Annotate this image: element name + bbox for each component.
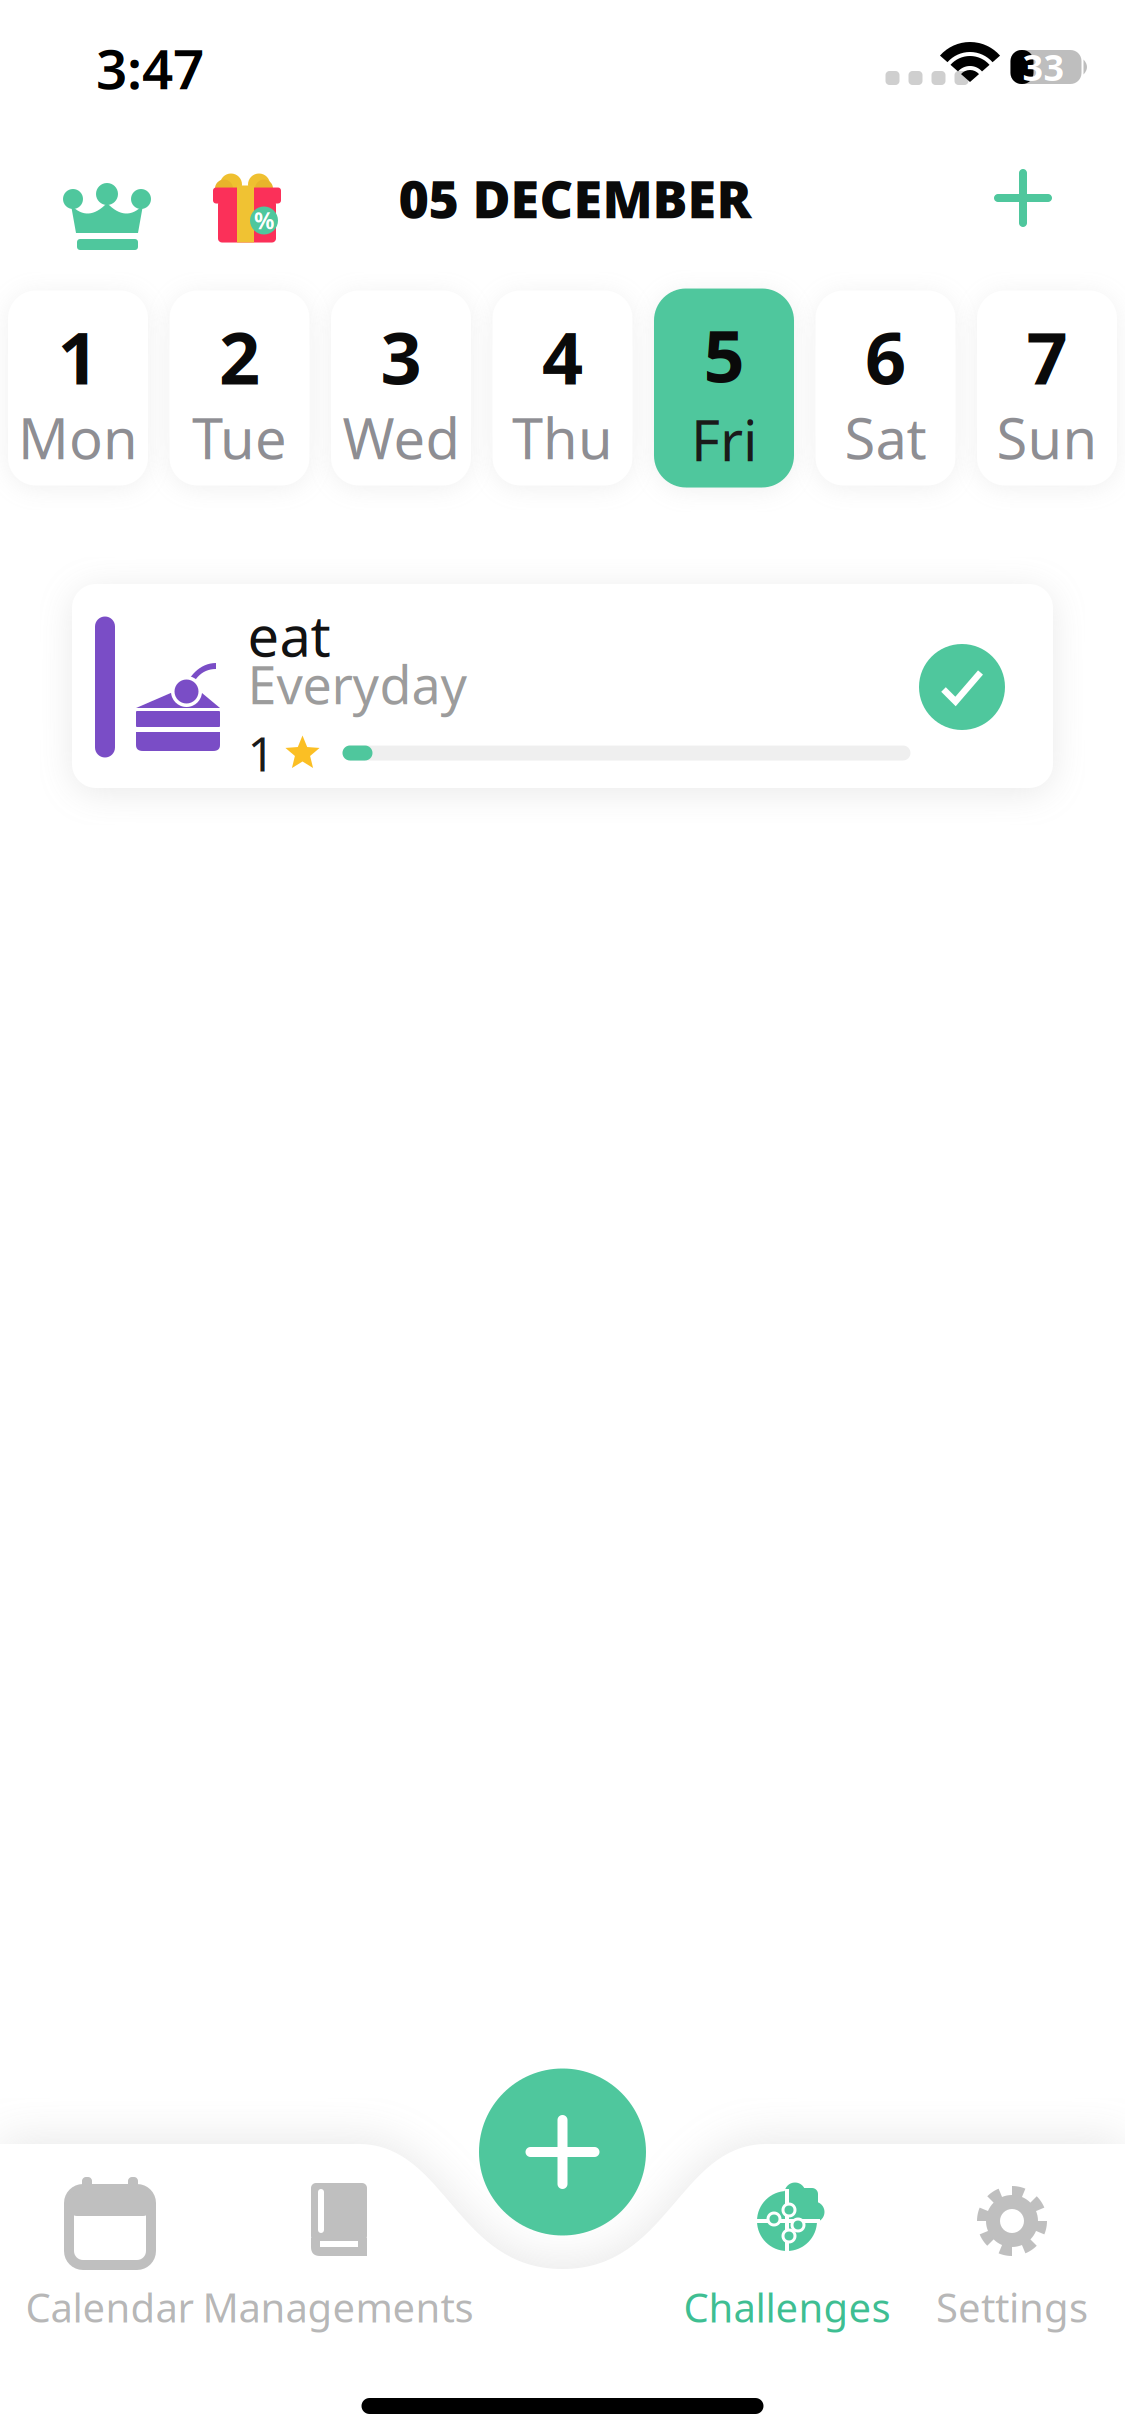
staticText: 5 <box>703 307 744 402</box>
staticText: Thu <box>512 400 613 475</box>
button[interactable]: Gifts <box>200 154 292 250</box>
staticText: 7 <box>1026 309 1067 404</box>
button[interactable]: 2 <box>169 290 309 485</box>
staticText: Calendar <box>25 2280 194 2333</box>
button[interactable]: Settings <box>867 2175 1125 2329</box>
staticText: 4 <box>542 309 583 404</box>
staticText: Managements <box>202 2280 473 2333</box>
staticText: 2 <box>219 309 260 404</box>
staticText: Mon <box>18 400 138 475</box>
staticText: 33 <box>1022 43 1064 91</box>
button[interactable]: Add habit <box>978 153 1068 243</box>
staticText: Settings <box>936 2280 1088 2333</box>
staticText: Wed <box>342 400 459 475</box>
button[interactable]: 7 <box>977 290 1117 485</box>
staticText: % <box>254 205 274 235</box>
staticText: Fri <box>691 402 757 477</box>
button[interactable]: 4 <box>492 290 632 485</box>
button[interactable]: 5 <box>654 288 794 487</box>
staticText: Everyday <box>247 649 467 719</box>
staticText: 3:47 <box>96 32 204 104</box>
button[interactable]: 3 <box>331 290 471 485</box>
staticText: 6 <box>865 309 906 404</box>
button[interactable]: 1 <box>8 290 148 485</box>
staticText: 3 <box>380 309 421 404</box>
staticText: 1 <box>247 721 274 785</box>
staticText: eat <box>247 598 330 672</box>
button[interactable]: Managements <box>193 2175 483 2329</box>
button[interactable]: eat <box>72 584 1053 788</box>
staticText: Sun <box>996 400 1097 475</box>
button[interactable]: Premium <box>61 163 153 245</box>
staticText: Tue <box>192 400 287 475</box>
button[interactable]: Challenges <box>642 2175 932 2329</box>
staticText: Challenges <box>683 2280 890 2333</box>
staticText: Sat <box>844 400 926 475</box>
button[interactable]: 6 <box>815 290 955 485</box>
button[interactable]: Create <box>472 2062 652 2242</box>
button[interactable]: Calendar <box>0 2175 255 2329</box>
staticText: 1 <box>57 309 98 404</box>
staticText: 05 DECEMBER <box>398 163 751 233</box>
